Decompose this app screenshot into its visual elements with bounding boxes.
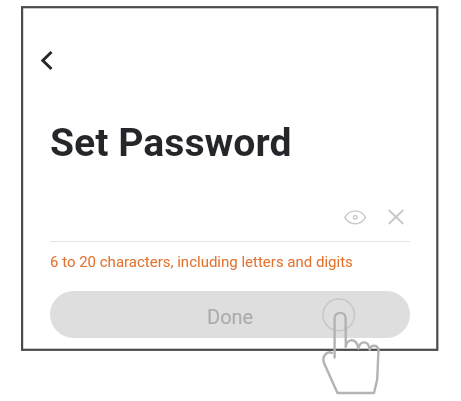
button[interactable]: Clear bbox=[380, 201, 412, 233]
staticText: Done bbox=[207, 305, 254, 328]
button[interactable]: Back bbox=[32, 46, 62, 76]
staticText: 6 to 20 characters, including letters an… bbox=[50, 253, 353, 271]
staticText: Set Password bbox=[50, 120, 292, 166]
button[interactable]: Show password bbox=[339, 201, 371, 233]
button[interactable]: Done bbox=[50, 291, 410, 338]
